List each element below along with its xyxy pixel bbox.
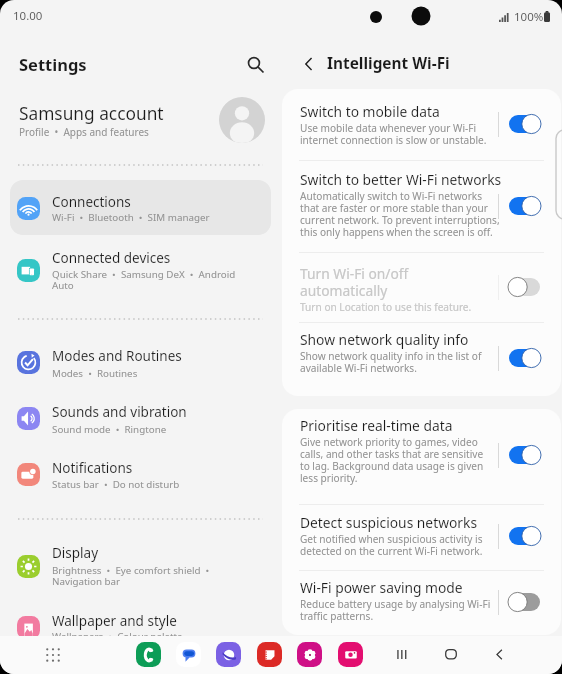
button[interactable]	[0, 95, 281, 147]
button[interactable]: Galaxy Store	[297, 642, 322, 667]
button[interactable]: Toggle	[509, 593, 540, 611]
staticText: Detect suspicious networks	[300, 513, 477, 532]
staticText: Turn on Location to use this feature.	[300, 300, 472, 314]
staticText: available Wi-Fi networks.	[300, 361, 417, 375]
staticText: Samsung account	[19, 102, 164, 126]
staticText: Sound mode • Ringtone	[52, 423, 167, 436]
button[interactable]: Toggle	[509, 349, 540, 367]
button[interactable]	[10, 391, 271, 446]
staticText: detected on the current Wi-Fi network.	[300, 544, 483, 558]
button[interactable]	[281, 572, 562, 632]
button[interactable]	[281, 176, 562, 236]
button[interactable]	[10, 243, 271, 298]
staticText: Reduce battery usage by analysing Wi-Fi	[300, 597, 491, 611]
button[interactable]: Back	[295, 50, 323, 78]
staticText: Modes and Routines	[52, 347, 182, 365]
button[interactable]: Camera	[338, 642, 363, 667]
staticText: traffic patterns.	[300, 609, 374, 623]
staticText: 100%	[514, 9, 544, 25]
staticText: Turn Wi-Fi on/off	[300, 264, 409, 283]
staticText: Use mobile data whenever your Wi-Fi	[300, 121, 477, 135]
staticText: Notifications	[52, 459, 133, 477]
staticText: Auto	[52, 279, 74, 292]
button[interactable]: Search	[239, 48, 271, 80]
button[interactable]: Messages	[176, 642, 201, 667]
staticText: to lag. Background data usage is given	[300, 459, 484, 473]
staticText: Profile • Apps and features	[19, 125, 149, 139]
staticText: automatically	[300, 281, 388, 300]
staticText: Give network priority to games, video	[300, 435, 478, 449]
staticText: Wi-Fi power saving mode	[300, 578, 463, 597]
button[interactable]: Toggle	[509, 527, 540, 545]
button[interactable]	[10, 447, 271, 502]
button[interactable]: Toggle	[509, 278, 540, 296]
button[interactable]	[10, 335, 271, 390]
staticText: Switch to mobile data	[300, 102, 440, 121]
staticText: Show network quality info in the list of	[300, 349, 482, 363]
staticText: Modes • Routines	[52, 367, 138, 380]
staticText: Connections	[52, 193, 131, 211]
staticText: Status bar • Do not disturb	[52, 478, 180, 491]
button[interactable]	[281, 257, 562, 317]
button[interactable]: Toggle	[509, 115, 540, 133]
staticText: internet connection is slow or unstable.	[300, 133, 487, 147]
button[interactable]	[10, 539, 271, 594]
button[interactable]	[10, 600, 271, 655]
button[interactable]	[281, 94, 562, 154]
staticText: Prioritise real-time data	[300, 416, 453, 435]
staticText: less priority.	[300, 471, 358, 485]
staticText: Display	[52, 544, 99, 562]
staticText: current network. To prevent interruption…	[300, 213, 500, 227]
staticText: Quick Share • Samsung DeX • Android	[52, 268, 236, 281]
button[interactable]: Recents	[388, 641, 414, 667]
button[interactable]: Toggle	[509, 197, 540, 215]
staticText: Connected devices	[52, 249, 171, 267]
staticText: Wi-Fi • Bluetooth • SIM manager	[52, 211, 210, 224]
button[interactable]	[281, 425, 562, 485]
staticText: calls, and other tasks that are sensitiv…	[300, 447, 484, 461]
staticText: this only happens when the screen is off…	[300, 225, 493, 239]
staticText: Wallpapers • Colour palette	[52, 630, 183, 643]
staticText: that are faster or more stable than your	[300, 201, 488, 215]
button[interactable]: Files	[257, 642, 282, 667]
staticText: 10.00	[13, 8, 43, 24]
staticText: Intelligent Wi-Fi	[327, 53, 450, 74]
button[interactable]: Phone	[136, 642, 161, 667]
staticText: Brightness • Eye comfort shield •	[52, 564, 210, 577]
staticText: Show network quality info	[300, 330, 469, 349]
staticText: Get notified when suspicious activity is	[300, 532, 483, 546]
staticText: Navigation bar	[52, 575, 121, 588]
staticText: Settings	[19, 53, 87, 75]
button[interactable]: Back	[486, 641, 512, 667]
button[interactable]: Internet	[216, 642, 241, 667]
button[interactable]	[10, 180, 271, 235]
button[interactable]	[281, 328, 562, 388]
button[interactable]: Home	[438, 641, 464, 667]
staticText: Wallpaper and style	[52, 612, 177, 630]
staticText: Switch to better Wi-Fi networks	[300, 170, 502, 189]
staticText: Sounds and vibration	[52, 403, 187, 421]
button[interactable]: Toggle	[509, 446, 540, 464]
staticText: Automatically switch to Wi-Fi networks	[300, 189, 483, 203]
button[interactable]: All apps	[39, 641, 66, 668]
button[interactable]	[281, 506, 562, 566]
